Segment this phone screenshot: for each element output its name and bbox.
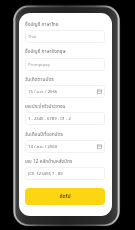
button[interactable]: 15 / ม.ค. / 2566 (25, 85, 105, 98)
other: Pick date (97, 144, 102, 149)
staticText: JCX 123456 7 - 89 (28, 171, 102, 177)
staticText: เลข 12 หลักด้านหลังบัตร (25, 158, 73, 165)
staticText: เลขประจำตัวประชาชน (25, 103, 66, 110)
staticText: Promptpay (28, 62, 102, 68)
staticText: 15 / ม.ค. / 2566 (28, 89, 97, 95)
button[interactable]: JCX 123456 7 - 89 (25, 167, 105, 180)
staticText: วันเกิดตามบัตร (25, 76, 54, 83)
staticText: Thai (28, 34, 102, 40)
other: Pick date (97, 89, 102, 94)
staticText: ชื่อบัญชี ภาษาอังกฤษ (25, 48, 66, 55)
staticText: ชื่อบัญชี ภาษาไทย (25, 21, 59, 28)
staticText: 1 - 2345 - 6789 - 01 - 2 (28, 116, 102, 122)
staticText: 14 / ส.ค. / 2560 (28, 144, 97, 150)
staticText: ถัดไป (59, 193, 71, 201)
button[interactable]: 14 / ส.ค. / 2560 (25, 140, 105, 153)
staticText: วันเดือนปีที่ออกบัตร (25, 131, 63, 138)
button[interactable]: Promptpay (25, 58, 105, 71)
button[interactable]: ถัดไป (25, 188, 105, 205)
button[interactable]: 1 - 2345 - 6789 - 01 - 2 (25, 112, 105, 125)
button[interactable]: Thai (25, 30, 105, 43)
